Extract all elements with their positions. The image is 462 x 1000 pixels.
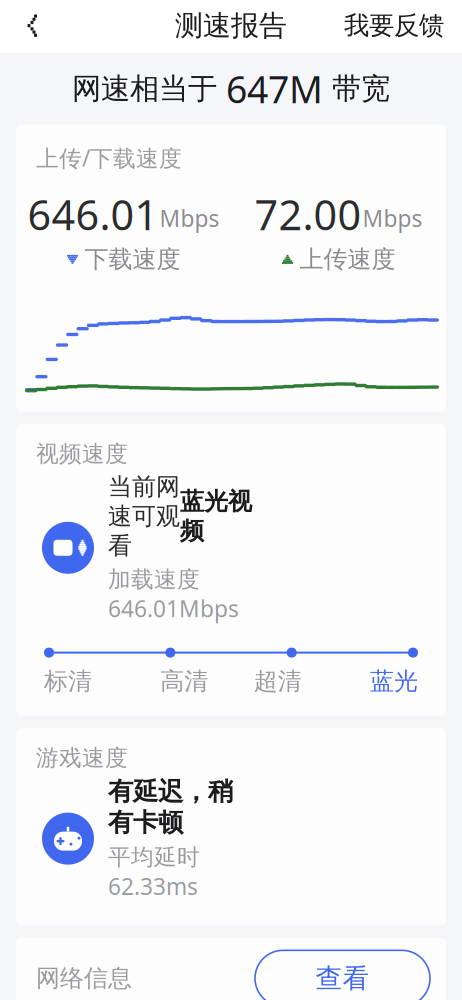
staticText: 高清 bbox=[160, 667, 208, 696]
staticText: 有延迟，稍有卡顿 bbox=[108, 776, 233, 838]
staticText: 蓝光视频 bbox=[180, 487, 252, 546]
button[interactable]: 我要反馈 bbox=[338, 0, 450, 53]
staticText: 646.01 bbox=[27, 187, 158, 242]
button[interactable]: 查看 bbox=[255, 950, 430, 1000]
staticText: 我要反馈 bbox=[344, 10, 444, 41]
staticText: Mbps bbox=[159, 203, 219, 233]
staticText: 加载速度 646.01Mbps bbox=[108, 563, 239, 624]
staticText: 测速报告 bbox=[175, 8, 287, 43]
staticText: 上传速度 bbox=[299, 245, 395, 274]
staticText: Mbps bbox=[362, 203, 422, 233]
staticText: 当前网速可观看 bbox=[108, 472, 180, 560]
staticText: 647M bbox=[226, 64, 323, 113]
staticText: 视频速度 bbox=[36, 440, 128, 468]
staticText: 平均延时 62.33ms bbox=[108, 841, 200, 901]
staticText: 上传/下载速度 bbox=[36, 143, 182, 173]
staticText: 标清 bbox=[44, 667, 92, 696]
staticText: 网络信息 bbox=[36, 964, 132, 993]
staticText: 网速相当于 bbox=[72, 71, 226, 107]
staticText: 蓝光 bbox=[370, 667, 418, 696]
staticText: 游戏速度 bbox=[36, 744, 128, 772]
staticText: 查看 bbox=[315, 962, 369, 995]
staticText: 带宽 bbox=[323, 71, 390, 107]
staticText: 超清 bbox=[254, 667, 302, 696]
staticText: 72.00 bbox=[254, 187, 361, 242]
staticText: 下载速度 bbox=[84, 245, 180, 274]
button[interactable]: 返回 bbox=[12, 2, 58, 50]
